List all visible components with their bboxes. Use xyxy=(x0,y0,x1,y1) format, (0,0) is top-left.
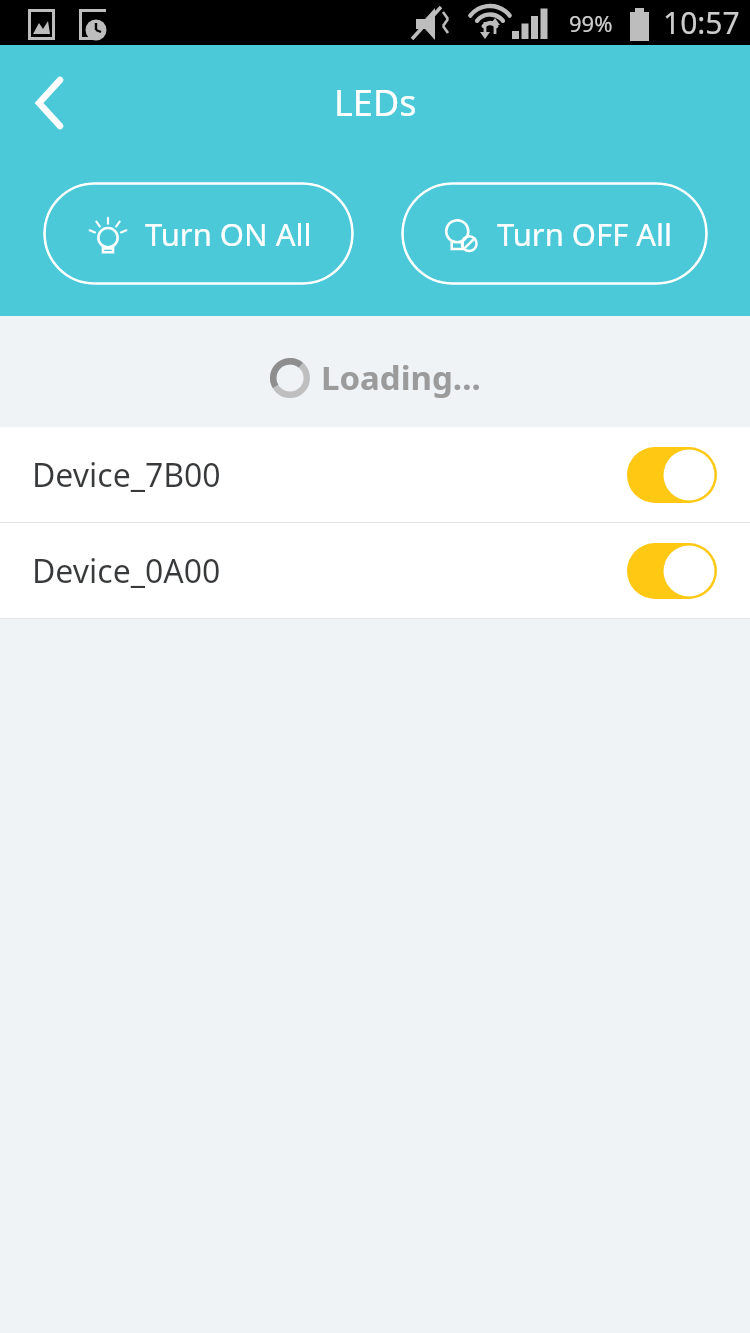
staticText: Turn OFF All xyxy=(497,213,673,255)
staticText: Loading... xyxy=(321,355,481,400)
button[interactable]: Toggle Device_0A00 xyxy=(627,543,717,599)
staticText: Device_0A00 xyxy=(32,549,221,593)
button[interactable]: Turn OFF All xyxy=(401,182,708,285)
staticText: Turn ON All xyxy=(145,213,312,255)
button[interactable]: Turn ON All xyxy=(43,182,354,285)
staticText: 10:57 xyxy=(663,2,740,43)
button[interactable]: Back xyxy=(12,65,88,141)
button[interactable]: Toggle Device_7B00 xyxy=(627,447,717,503)
staticText: LEDs xyxy=(334,78,417,127)
button[interactable]: Device_7B00 xyxy=(0,427,750,522)
staticText: Device_7B00 xyxy=(32,453,221,497)
button[interactable]: Device_0A00 xyxy=(0,523,750,618)
staticText: 99% xyxy=(569,8,613,38)
